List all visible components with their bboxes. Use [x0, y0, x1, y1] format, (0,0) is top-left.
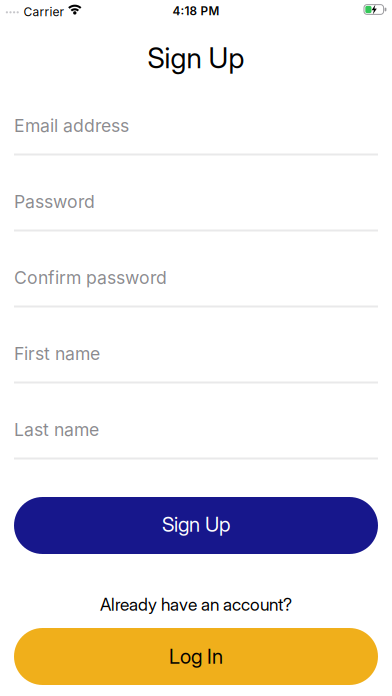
staticText: 4:18 PM: [172, 4, 219, 18]
staticText: Log In: [169, 644, 223, 669]
staticText: First name: [14, 343, 100, 364]
staticText: Sign Up: [162, 512, 230, 537]
staticText: Sign Up: [147, 41, 244, 75]
staticText: Password: [14, 191, 95, 212]
staticText: Already have an account?: [100, 594, 292, 615]
staticText: Email address: [14, 115, 129, 136]
staticText: Carrier: [23, 5, 64, 19]
staticText: Confirm password: [14, 267, 167, 288]
staticText: Last name: [14, 419, 99, 440]
